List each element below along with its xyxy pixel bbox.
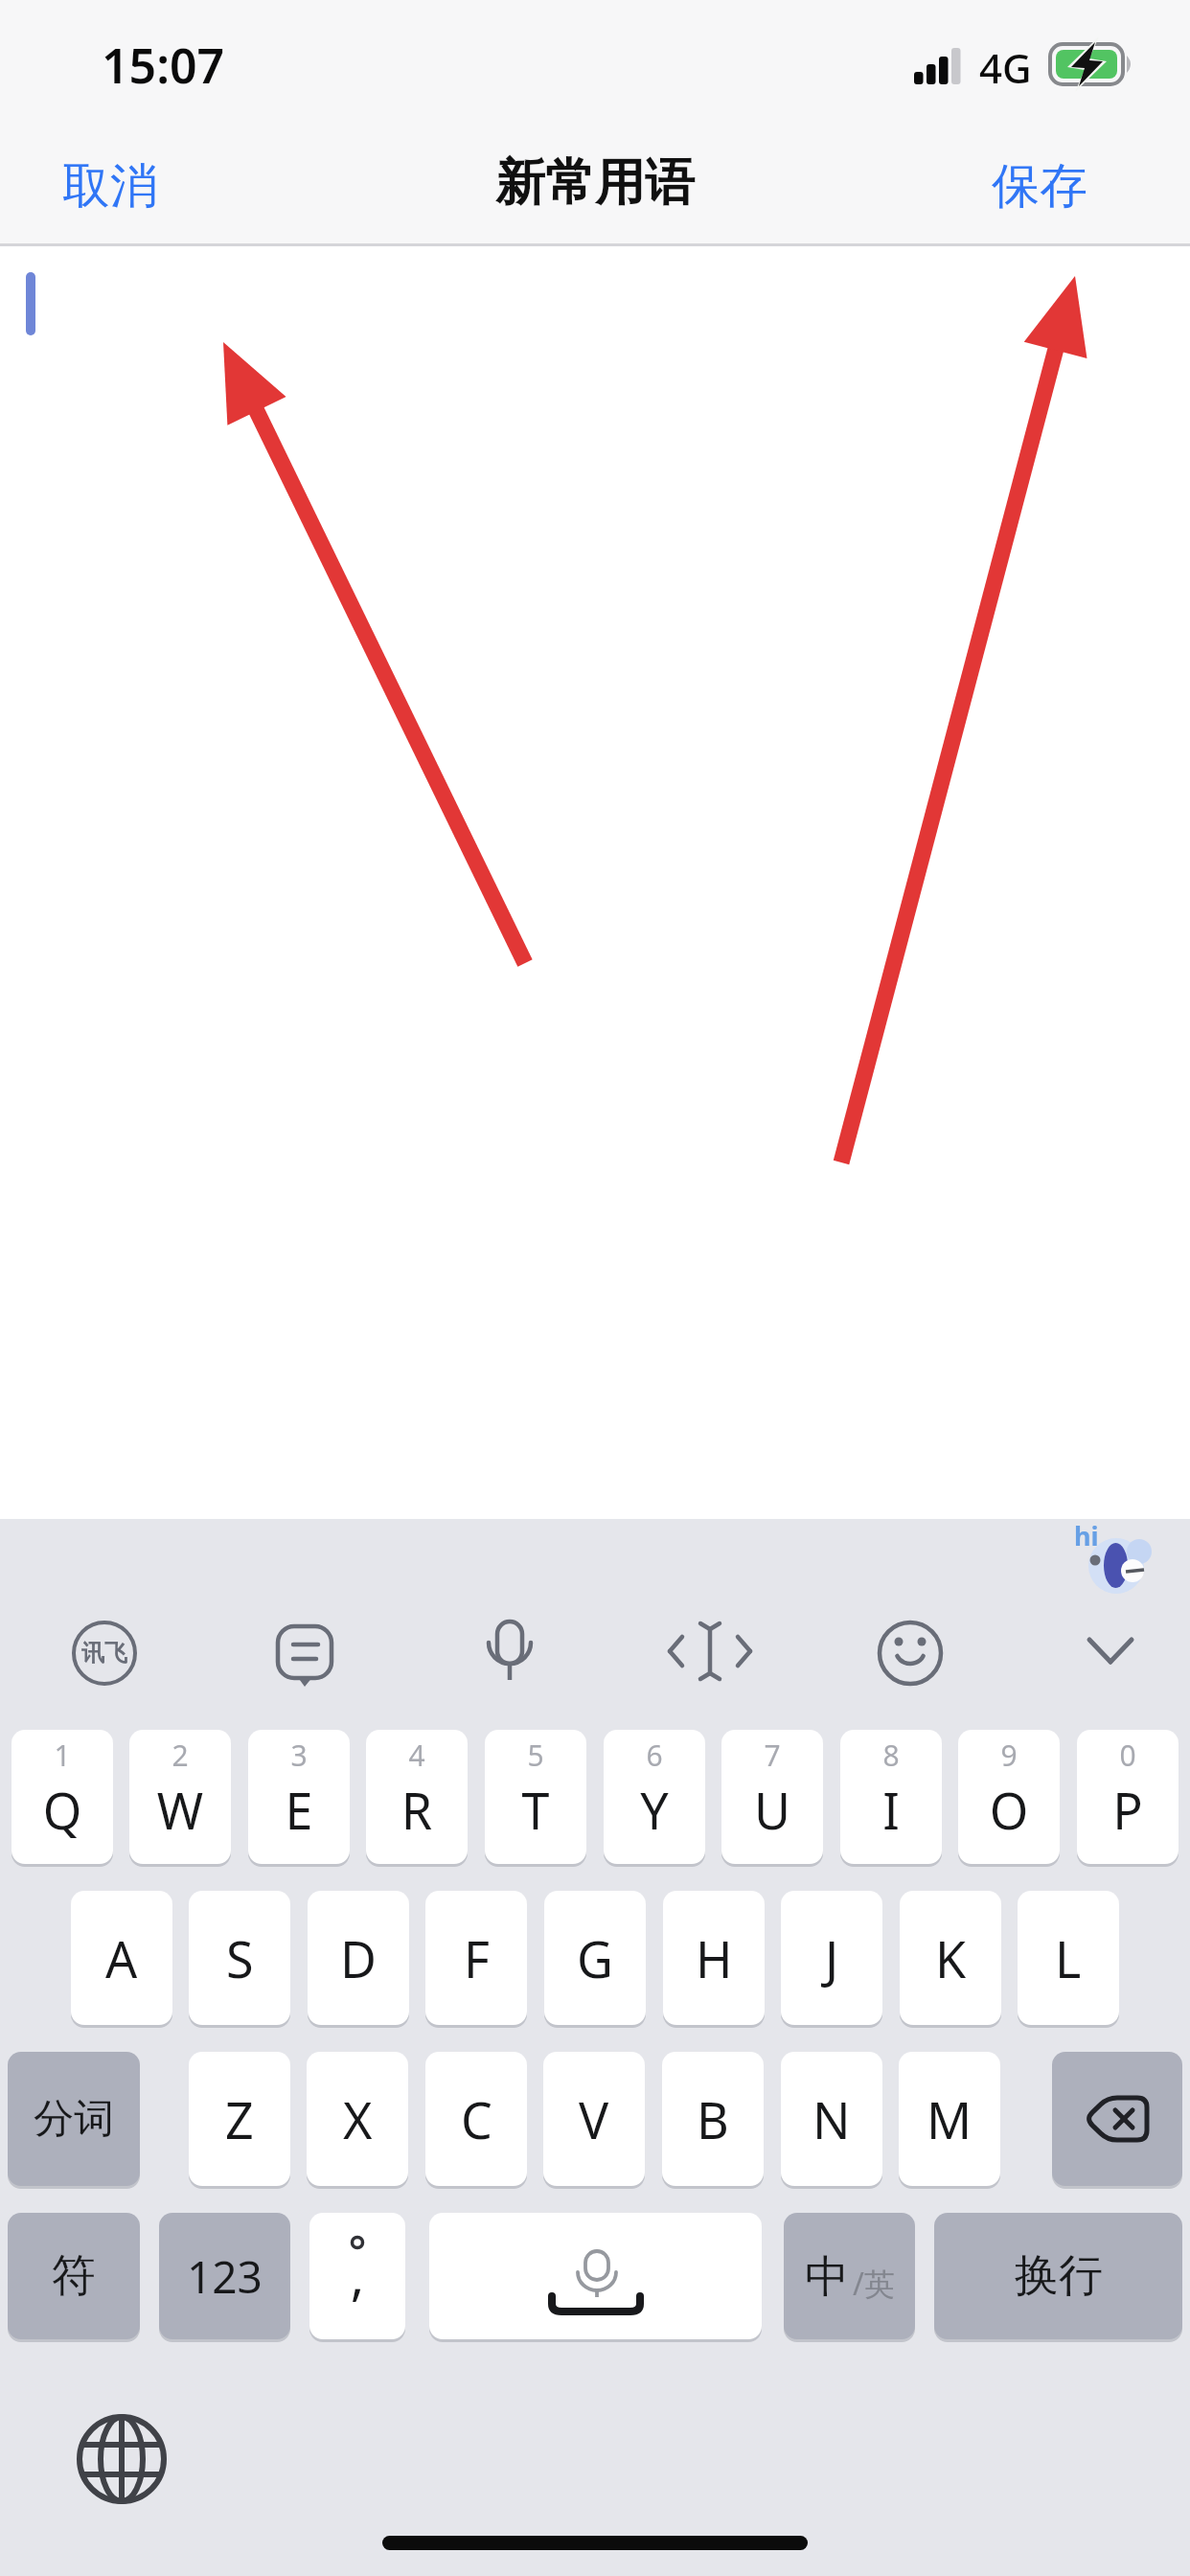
button[interactable]: N [781, 2052, 882, 2186]
staticText: B [697, 2085, 729, 2153]
staticText: 换行 [1015, 2248, 1103, 2304]
button[interactable]: H [663, 1891, 765, 2025]
button[interactable] [1052, 2052, 1182, 2186]
staticText: , [309, 2240, 405, 2326]
button[interactable]: 3 [248, 1730, 350, 1864]
button[interactable]: C [425, 2052, 527, 2186]
staticText: H [696, 1924, 733, 1992]
staticText: 1 [11, 1736, 113, 1774]
staticText: 保存 [992, 156, 1087, 217]
staticText: 2 [129, 1736, 231, 1774]
button[interactable]: 分词 [8, 2052, 140, 2186]
staticText: hi [1074, 1518, 1099, 1553]
button[interactable]: S [189, 1891, 290, 2025]
staticText: V [579, 2085, 609, 2153]
button[interactable] [270, 1619, 339, 1688]
staticText: G [577, 1924, 613, 1992]
staticText: 5 [485, 1736, 586, 1774]
staticText: 3 [248, 1736, 350, 1774]
staticText: U [721, 1776, 823, 1852]
button[interactable] [475, 1619, 544, 1688]
staticText: C [461, 2085, 492, 2153]
button[interactable]: 6 [604, 1730, 705, 1864]
staticText: W [129, 1776, 231, 1852]
button[interactable]: , [309, 2213, 405, 2339]
staticText: 15:07 [102, 33, 225, 98]
staticText: E [248, 1776, 350, 1852]
button[interactable]: F [425, 1891, 527, 2025]
button[interactable]: 取消 [48, 151, 172, 220]
staticText: L [1055, 1924, 1082, 1992]
staticText: I [840, 1776, 942, 1852]
staticText: F [464, 1924, 490, 1992]
button[interactable]: 5 [485, 1730, 586, 1864]
staticText: Y [604, 1776, 705, 1852]
staticText: T [485, 1776, 586, 1852]
staticText: S [226, 1924, 254, 1992]
staticText: 取消 [62, 156, 158, 217]
button[interactable]: M [899, 2052, 1000, 2186]
button[interactable]: D [308, 1891, 409, 2025]
staticText: 9 [958, 1736, 1060, 1774]
button[interactable]: 中 [784, 2213, 915, 2339]
staticText: J [825, 1924, 839, 1992]
button[interactable]: B [662, 2052, 764, 2186]
staticText: 新常用语 [0, 151, 1190, 251]
button[interactable]: L [1018, 1891, 1119, 2025]
staticText: 4G [979, 40, 1032, 95]
staticText: 123 [187, 2246, 263, 2307]
staticText: 符 [52, 2248, 96, 2304]
button[interactable]: 保存 [977, 151, 1102, 220]
staticText: X [343, 2085, 373, 2153]
button[interactable]: 4 [366, 1730, 468, 1864]
button[interactable]: V [543, 2052, 645, 2186]
staticText: 6 [604, 1736, 705, 1774]
button[interactable]: Z [189, 2052, 290, 2186]
button[interactable]: 讯飞 [74, 1622, 135, 1684]
staticText: O [958, 1776, 1060, 1852]
button[interactable]: 8 [840, 1730, 942, 1864]
staticText: /英 [853, 2263, 895, 2305]
staticText: 分词 [34, 2094, 114, 2145]
button[interactable] [429, 2213, 762, 2339]
staticText: 8 [840, 1736, 942, 1774]
button[interactable]: 1 [11, 1730, 113, 1864]
button[interactable]: G [544, 1891, 646, 2025]
staticText: 0 [1077, 1736, 1179, 1774]
button[interactable]: 2 [129, 1730, 231, 1864]
staticText: Q [11, 1776, 113, 1852]
button[interactable]: K [900, 1891, 1001, 2025]
staticText: 4 [366, 1736, 468, 1774]
button[interactable]: 换行 [934, 2213, 1182, 2339]
button[interactable] [876, 1619, 945, 1688]
button[interactable]: A [71, 1891, 172, 2025]
button[interactable]: X [307, 2052, 408, 2186]
staticText: P [1077, 1776, 1179, 1852]
staticText: 讯飞 [81, 1639, 127, 1667]
staticText: R [366, 1776, 468, 1852]
button[interactable] [675, 1619, 744, 1688]
staticText: K [935, 1924, 967, 1992]
staticText: D [340, 1924, 377, 1992]
button[interactable]: J [781, 1891, 882, 2025]
button[interactable] [1076, 1619, 1145, 1688]
staticText: 7 [721, 1736, 823, 1774]
staticText: 中 [805, 2249, 849, 2305]
staticText: Z [225, 2085, 254, 2153]
staticText: M [927, 2085, 973, 2153]
staticText: A [105, 1924, 138, 1992]
button[interactable]: 符 [8, 2213, 140, 2339]
button[interactable]: 7 [721, 1730, 823, 1864]
button[interactable]: 9 [958, 1730, 1060, 1864]
button[interactable]: 0 [1077, 1730, 1179, 1864]
staticText: N [812, 2085, 851, 2153]
button[interactable]: 123 [159, 2213, 290, 2339]
